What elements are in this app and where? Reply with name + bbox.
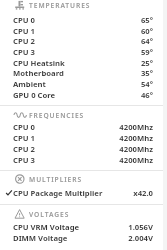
button[interactable]: Motherboard [0, 67, 167, 78]
button[interactable]: CPU VRM Voltage [0, 221, 167, 232]
staticText: CPU 0 [13, 15, 35, 25]
button[interactable]: CPU 2 [0, 143, 167, 154]
staticText: Ambient [13, 79, 46, 89]
staticText: 46° [56, 90, 153, 100]
staticText: 25° [65, 58, 153, 68]
staticText: 4200Mhz [35, 133, 153, 143]
staticText: CPU 1 [13, 26, 35, 36]
staticText: CPU 2 [13, 36, 35, 46]
staticText: CPU 1 [13, 133, 35, 143]
button[interactable]: CPU 1 [0, 25, 167, 36]
button[interactable]: CPU 2 [0, 35, 167, 46]
staticText: CPU 3 [13, 47, 35, 57]
staticText: 1.056V [80, 222, 153, 232]
button[interactable]: CPU 1 [0, 132, 167, 143]
staticText: 2.004V [68, 233, 153, 243]
staticText: 65° [35, 15, 153, 25]
button[interactable]: CPU Heatsink [0, 57, 167, 68]
staticText: VOLTAGES [29, 210, 70, 219]
staticText: 4200Mhz [35, 144, 153, 154]
staticText: 64° [35, 36, 153, 46]
staticText: CPU Package Multiplier [13, 188, 103, 198]
staticText: MULTIPLIERS [29, 175, 83, 184]
staticText: Motherboard [13, 68, 64, 78]
button[interactable]: CPU 3 [0, 46, 167, 57]
staticText: CPU 3 [13, 155, 35, 165]
staticText: CPU VRM Voltage [13, 222, 80, 232]
staticText: CPU 0 [13, 122, 35, 132]
staticText: 35° [64, 68, 153, 78]
staticText: 60° [35, 26, 153, 36]
button[interactable]: GPU 0 Core [0, 89, 167, 100]
button[interactable]: CPU Package Multiplier [0, 187, 167, 198]
staticText: 4200Mhz [35, 122, 153, 132]
staticText: 54° [46, 79, 153, 89]
staticText: 59° [35, 47, 153, 57]
staticText: CPU 2 [13, 144, 35, 154]
button[interactable]: Ambient [0, 78, 167, 89]
staticText: GPU 0 Core [13, 90, 56, 100]
staticText: DIMM Voltage [13, 233, 68, 243]
staticText: x42.0 [103, 188, 153, 198]
button[interactable]: CPU 0 [0, 14, 167, 25]
staticText: CPU Heatsink [13, 58, 65, 68]
button[interactable]: CPU 0 [0, 121, 167, 132]
button[interactable]: CPU 3 [0, 154, 167, 165]
staticText: TEMPERATURES [29, 1, 91, 10]
staticText: FREQUENCIES [29, 111, 85, 120]
staticText: 4200Mhz [35, 155, 153, 165]
button[interactable]: DIMM Voltage [0, 232, 167, 243]
